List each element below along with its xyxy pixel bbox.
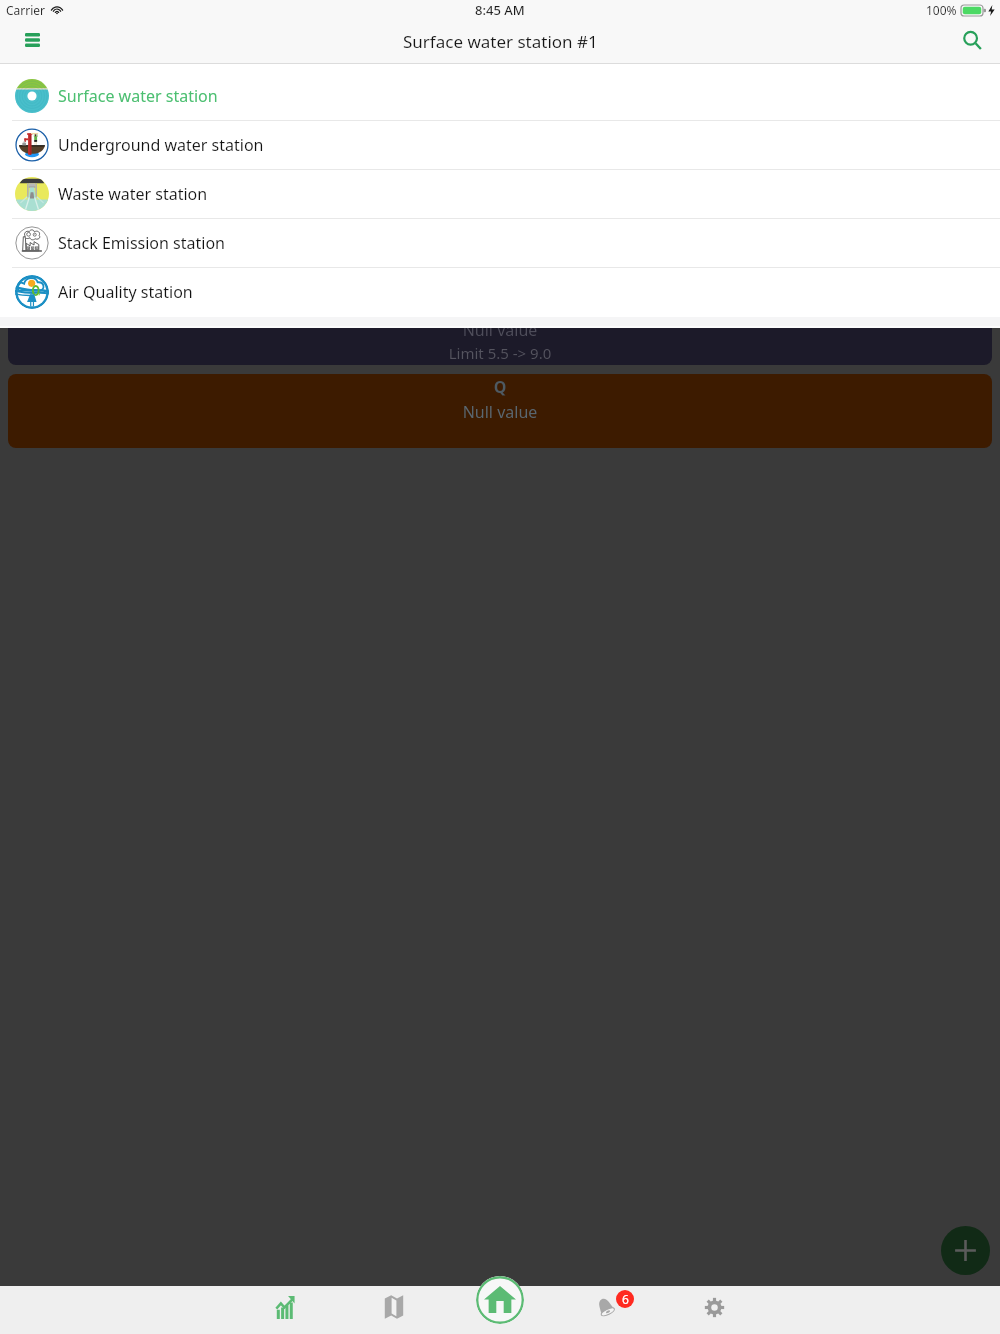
button[interactable]: Waste water station: [0, 170, 1000, 218]
staticText: 100%: [926, 2, 957, 18]
button[interactable]: Home: [476, 1276, 524, 1324]
staticText: 6: [622, 1291, 629, 1307]
staticText: Q: [8, 376, 992, 398]
button[interactable]: Map: [340, 1286, 447, 1334]
button[interactable]: Settings: [661, 1286, 768, 1334]
button[interactable]: Menu: [14, 24, 50, 60]
staticText: Limit 5.5 -> 9.0: [8, 343, 992, 363]
staticText: Stack Emission station: [58, 232, 225, 254]
staticText: Underground water station: [58, 134, 264, 156]
button[interactable]: Add: [941, 1226, 990, 1275]
button[interactable]: Air Quality station: [0, 268, 1000, 316]
staticText: Surface water station #1: [403, 30, 598, 53]
staticText: Surface water station: [58, 85, 218, 107]
button[interactable]: Notifications: [554, 1286, 661, 1334]
button[interactable]: Statistics: [233, 1286, 340, 1334]
staticText: Carrier: [6, 2, 46, 18]
button[interactable]: Search: [954, 24, 990, 60]
button[interactable]: Stack Emission station: [0, 219, 1000, 267]
staticText: Waste water station: [58, 183, 208, 205]
button[interactable]: pH: [8, 291, 992, 365]
staticText: Null value: [8, 319, 992, 341]
staticText: Null value: [8, 401, 992, 423]
staticText: pH: [8, 295, 992, 317]
staticText: Air Quality station: [58, 281, 193, 303]
staticText: 8:45 AM: [475, 1, 525, 19]
button[interactable]: Underground water station: [0, 121, 1000, 169]
button[interactable]: Surface water station: [0, 72, 1000, 120]
button[interactable]: Q: [8, 374, 992, 448]
